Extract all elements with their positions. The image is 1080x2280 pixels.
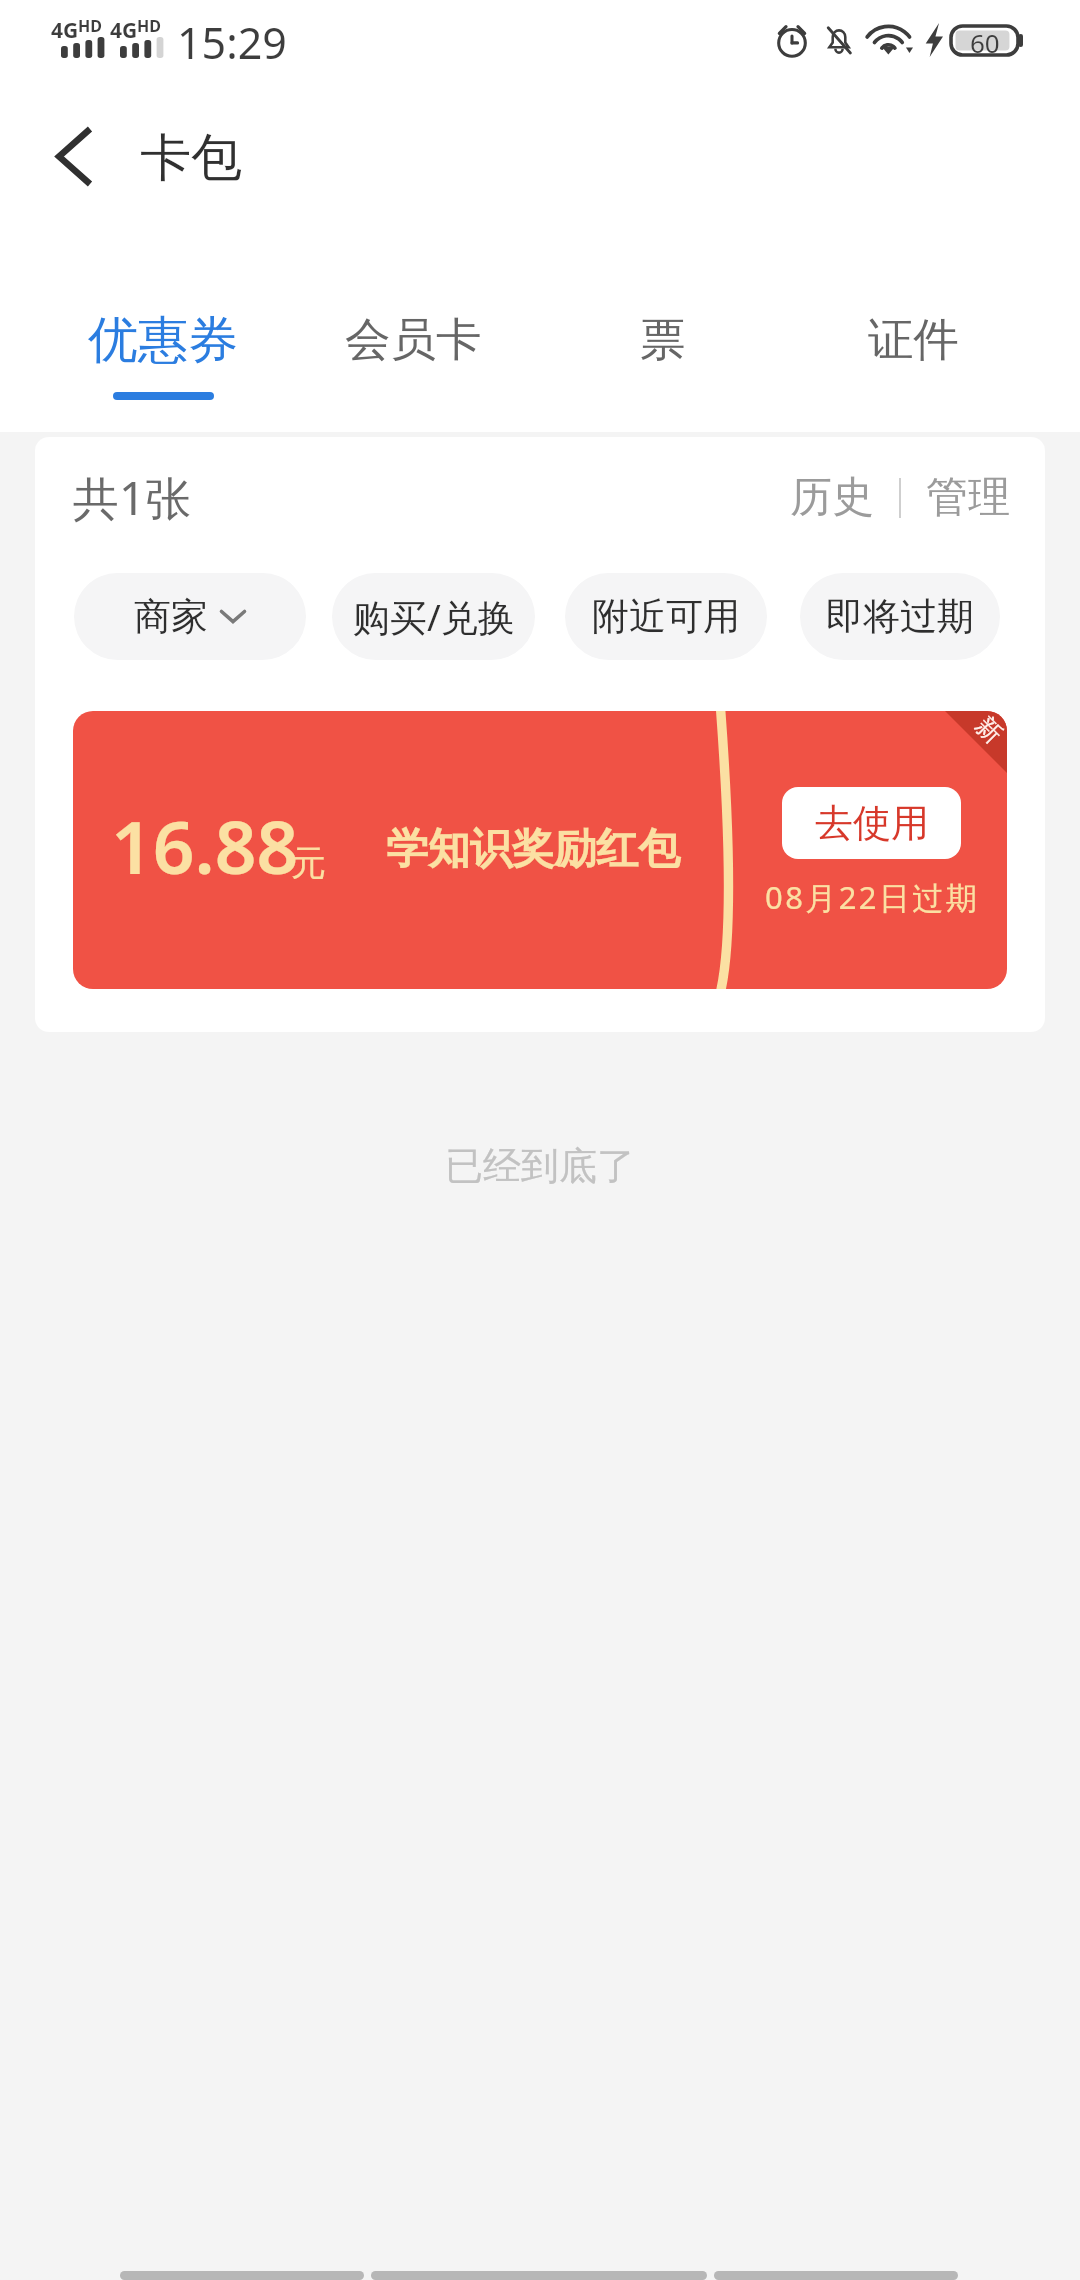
button[interactable]: 商家 [74,573,306,660]
other: Wi-Fi [869,23,913,57]
staticText: 共1张 [73,466,192,529]
button[interactable]: Back [30,112,118,200]
button[interactable]: 历史 [780,466,884,529]
staticText: 即将过期 [826,593,974,640]
button[interactable]: Home [371,2271,707,2280]
staticText: 历史 [790,471,874,524]
staticText: 购买/兑换 [353,591,515,642]
staticText: 4G [110,16,138,45]
staticText: 优惠券 [88,309,238,372]
button[interactable]: 管理 [916,466,1020,529]
button[interactable]: 会员卡 [288,296,538,406]
button[interactable]: 即将过期 [800,573,1000,660]
staticText: HD [78,15,102,37]
button[interactable]: 购买/兑换 [332,573,535,660]
staticText: 60 [970,25,1000,54]
other: Notifications off [824,22,854,58]
button[interactable]: Back [120,2271,364,2280]
button[interactable]: 优惠券 [38,296,288,406]
button[interactable]: 去使用 [782,787,961,859]
staticText: 票 [640,311,686,368]
staticText: 4G [51,16,79,45]
staticText: 附近可用 [592,593,740,640]
staticText: 08月22日过期 [765,876,980,918]
staticText: 证件 [868,311,959,368]
other: Charging [925,23,943,57]
staticText: 15:29 [177,13,287,72]
button[interactable]: 票 [538,296,788,406]
button[interactable]: 16.88 [73,711,1007,989]
staticText: 新 [970,711,1007,749]
staticText: HD [137,15,161,37]
staticText: 管理 [926,471,1010,524]
button[interactable]: Recent apps [714,2271,958,2280]
staticText: 卡包 [140,126,242,190]
staticText: 学知识奖励红包 [386,823,680,876]
staticText: 已经到底了 [0,1142,1080,1190]
button[interactable]: 附近可用 [565,573,767,660]
button[interactable]: 证件 [788,296,1038,406]
staticText: 去使用 [815,799,929,847]
staticText: 商家 [134,593,208,640]
staticText: 会员卡 [345,311,482,368]
other: Alarm [774,22,810,58]
staticText: 元 [291,841,326,885]
staticText: 16.88 [111,796,299,895]
